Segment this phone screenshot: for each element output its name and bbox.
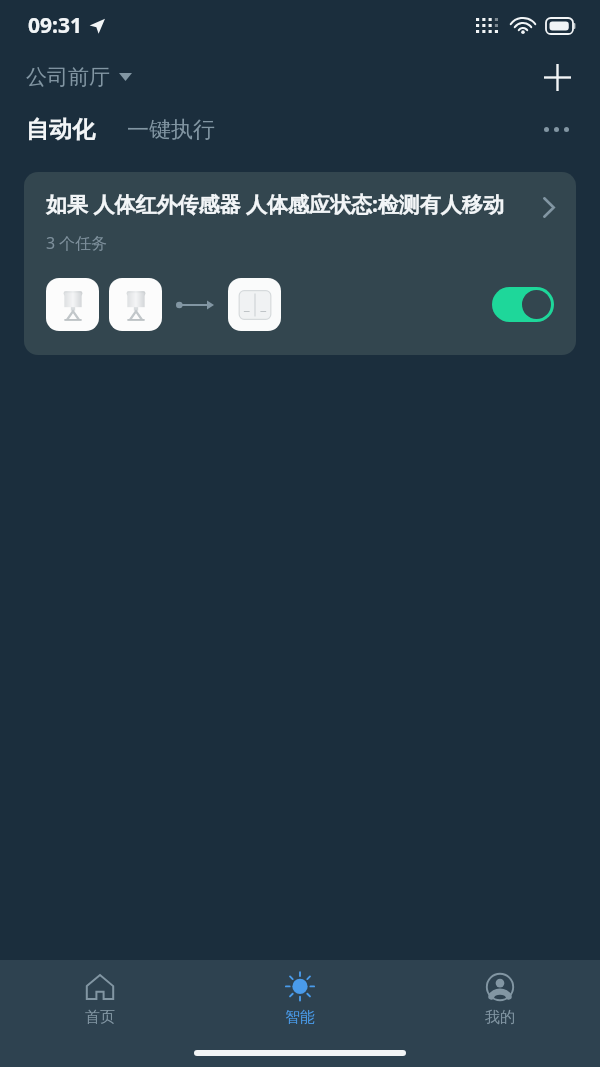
button[interactable]: Motion sensor device <box>109 278 162 331</box>
button[interactable]: Add <box>534 54 580 100</box>
button[interactable]: 如果 人体红外传感器 人体感应状态:检测有人移动 <box>24 172 576 355</box>
button[interactable]: More options <box>534 107 578 151</box>
button[interactable]: 公司前厅 <box>22 60 136 94</box>
staticText: 3 个任务 <box>46 232 108 254</box>
staticText: 我的 <box>485 1008 515 1027</box>
button[interactable]: Wall switch device <box>228 278 281 331</box>
button[interactable]: 首页 <box>0 960 200 1038</box>
button[interactable]: Motion sensor device <box>46 278 99 331</box>
button[interactable]: 一键执行 <box>123 110 219 150</box>
staticText: 09:31 <box>28 11 82 40</box>
button[interactable]: 我的 <box>400 960 600 1038</box>
button[interactable]: Automation enabled toggle <box>492 287 554 322</box>
staticText: 一键执行 <box>127 116 215 144</box>
button[interactable]: 智能 <box>200 960 400 1038</box>
staticText: 公司前厅 <box>26 64 110 90</box>
button[interactable]: 自动化 <box>22 109 99 150</box>
staticText: 首页 <box>85 1008 115 1027</box>
staticText: 自动化 <box>26 115 95 144</box>
staticText: 如果 人体红外传感器 人体感应状态:检测有人移动 <box>46 190 522 219</box>
staticText: 智能 <box>285 1008 315 1027</box>
